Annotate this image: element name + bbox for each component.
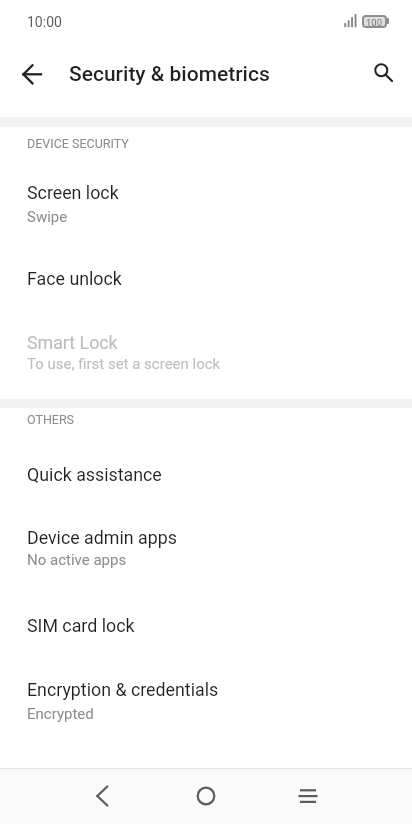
staticText: Screen lock xyxy=(27,182,119,203)
button[interactable] xyxy=(10,52,54,96)
staticText: DEVICE SECURITY xyxy=(27,136,129,151)
staticText: Swipe xyxy=(27,208,68,226)
staticText: Encryption & credentials xyxy=(27,679,219,700)
button[interactable] xyxy=(78,772,126,820)
button[interactable] xyxy=(361,51,405,95)
staticText: 100 xyxy=(366,17,383,26)
staticText: No active apps xyxy=(27,551,127,569)
button[interactable]: Encryption & credentials xyxy=(0,664,412,736)
button[interactable] xyxy=(182,772,230,820)
staticText: Smart Lock xyxy=(27,332,118,353)
staticText: SIM card lock xyxy=(27,615,135,636)
staticText: 10:00 xyxy=(27,14,62,30)
staticText: Face unlock xyxy=(27,268,122,289)
button[interactable]: SIM card lock xyxy=(0,600,412,660)
button[interactable]: Face unlock xyxy=(0,246,412,310)
button[interactable]: Device admin apps xyxy=(0,514,412,586)
button[interactable] xyxy=(284,772,332,820)
staticText: Encrypted xyxy=(27,705,94,723)
staticText: To use, first set a screen lock xyxy=(27,355,221,373)
staticText: Security & biometrics xyxy=(69,62,270,87)
button[interactable]: Smart Lock xyxy=(0,318,412,390)
staticText: Device admin apps xyxy=(27,527,177,548)
staticText: OTHERS xyxy=(27,412,75,427)
staticText: Quick assistance xyxy=(27,464,162,485)
button[interactable]: Screen lock xyxy=(0,168,412,240)
button[interactable]: Quick assistance xyxy=(0,450,412,514)
